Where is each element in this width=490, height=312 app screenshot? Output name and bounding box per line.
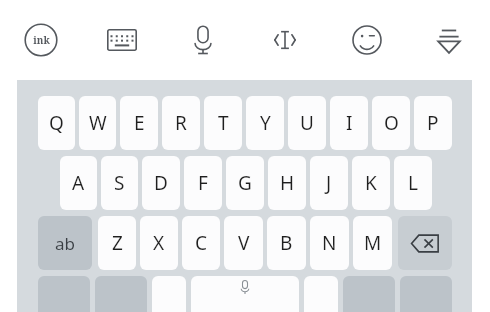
button[interactable]: J bbox=[310, 156, 348, 210]
staticText: T bbox=[218, 110, 229, 136]
button[interactable]: V bbox=[224, 216, 263, 270]
staticText: H bbox=[280, 170, 295, 196]
staticText: V bbox=[238, 230, 250, 256]
button[interactable]: B bbox=[267, 216, 306, 270]
button[interactable]: D bbox=[142, 156, 180, 210]
button[interactable]: R bbox=[162, 96, 200, 150]
staticText: J bbox=[326, 170, 332, 196]
staticText: Q bbox=[49, 110, 64, 136]
button[interactable]: H bbox=[268, 156, 306, 210]
button[interactable]: W bbox=[79, 96, 116, 150]
button[interactable]: Keyboard layout bbox=[81, 0, 162, 80]
staticText: D bbox=[154, 170, 168, 196]
staticText: B bbox=[280, 230, 293, 256]
staticText: U bbox=[300, 110, 314, 136]
staticText: ink bbox=[33, 33, 50, 47]
button[interactable]: N bbox=[310, 216, 349, 270]
staticText: K bbox=[365, 170, 377, 196]
button[interactable]: M bbox=[353, 216, 392, 270]
button[interactable]: Y bbox=[246, 96, 284, 150]
staticText: R bbox=[175, 110, 187, 136]
button[interactable]: Z bbox=[98, 216, 136, 270]
staticText: O bbox=[384, 110, 399, 136]
button[interactable]: Emoji bbox=[326, 0, 408, 80]
staticText: Z bbox=[112, 230, 123, 256]
staticText: P bbox=[427, 110, 439, 136]
staticText: A bbox=[72, 170, 85, 196]
staticText: E bbox=[134, 110, 145, 136]
button[interactable]: Hide keyboard bbox=[408, 0, 490, 80]
staticText: Y bbox=[260, 110, 271, 136]
button[interactable]: E bbox=[120, 96, 158, 150]
button[interactable]: X bbox=[140, 216, 178, 270]
button[interactable]: Voice input bbox=[162, 0, 244, 80]
staticText: N bbox=[322, 230, 337, 256]
staticText: I bbox=[346, 110, 353, 136]
staticText: G bbox=[238, 170, 252, 196]
staticText: ab bbox=[55, 232, 75, 255]
staticText: W bbox=[89, 110, 107, 136]
button[interactable]: S bbox=[101, 156, 138, 210]
button[interactable]: C bbox=[182, 216, 220, 270]
button[interactable]: A bbox=[60, 156, 97, 210]
button[interactable]: K bbox=[352, 156, 390, 210]
button[interactable] bbox=[304, 276, 338, 312]
button[interactable]: Text cursor control bbox=[244, 0, 326, 80]
button[interactable] bbox=[152, 276, 186, 312]
button[interactable]: T bbox=[204, 96, 242, 150]
button[interactable]: Input method bbox=[0, 0, 81, 80]
button[interactable]: O bbox=[372, 96, 410, 150]
staticText: X bbox=[153, 230, 165, 256]
button[interactable]: ab bbox=[38, 216, 92, 270]
staticText: F bbox=[198, 170, 208, 196]
staticText: S bbox=[114, 170, 125, 196]
button[interactable]: G bbox=[226, 156, 264, 210]
button[interactable]: F bbox=[184, 156, 222, 210]
button[interactable]: L bbox=[394, 156, 432, 210]
button[interactable]: U bbox=[288, 96, 326, 150]
staticText: M bbox=[364, 230, 382, 256]
button[interactable]: P bbox=[414, 96, 452, 150]
button[interactable]: Backspace bbox=[398, 216, 452, 270]
button[interactable]: Voice input bbox=[191, 276, 299, 312]
button[interactable]: I bbox=[330, 96, 368, 150]
staticText: L bbox=[408, 170, 418, 196]
button[interactable]: Q bbox=[38, 96, 75, 150]
staticText: C bbox=[195, 230, 208, 256]
